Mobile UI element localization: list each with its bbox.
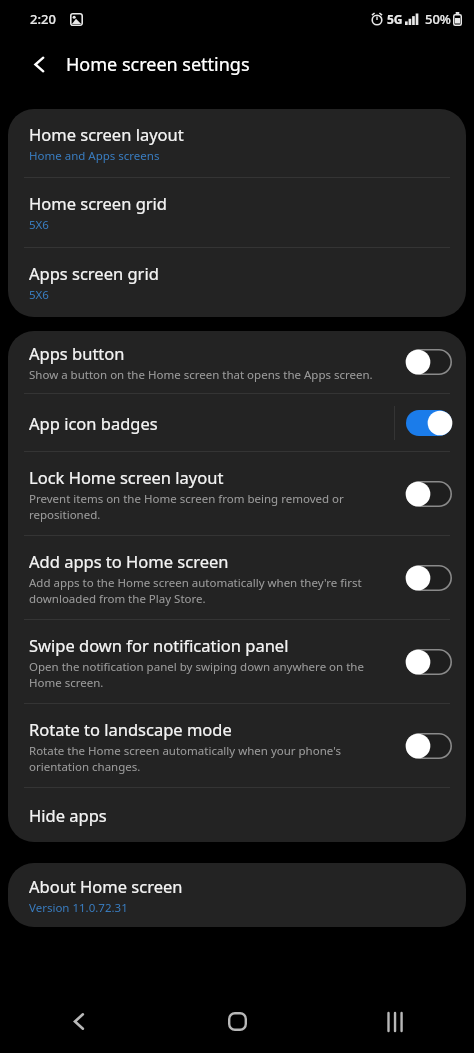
button[interactable]: Swipe down for notification panel	[8, 620, 466, 703]
button[interactable]: Home screen grid	[8, 178, 466, 247]
staticText: 5G	[387, 11, 403, 27]
button[interactable]: Home	[158, 990, 316, 1053]
staticText: Swipe down for notification panel	[29, 634, 289, 656]
button[interactable]: Off	[406, 649, 452, 675]
staticText: Apps button	[29, 342, 125, 364]
staticText: Version 11.0.72.31	[29, 900, 128, 916]
staticText: Home screen settings	[66, 52, 250, 77]
button[interactable]: Hide apps	[8, 788, 466, 842]
staticText: Add apps to the Home screen automaticall…	[29, 575, 396, 606]
button[interactable]: Home screen layout	[8, 109, 466, 177]
staticText: Add apps to Home screen	[29, 550, 229, 572]
button[interactable]: Apps button	[8, 331, 466, 393]
staticText: Home and Apps screens	[29, 148, 160, 164]
button[interactable]: Recent apps	[316, 990, 474, 1053]
button[interactable]: Apps screen grid	[8, 248, 466, 317]
button[interactable]: Off	[406, 349, 452, 375]
button[interactable]: About Home screen	[8, 863, 466, 927]
button[interactable]: App icon badges	[8, 394, 466, 451]
staticText: Lock Home screen layout	[29, 466, 224, 488]
button[interactable]: Add apps to Home screen	[8, 536, 466, 619]
staticText: Hide apps	[29, 804, 107, 826]
button[interactable]: Lock Home screen layout	[8, 452, 466, 535]
staticText: 5X6	[29, 217, 49, 233]
button[interactable]: Off	[406, 481, 452, 507]
staticText: Open the notification panel by swiping d…	[29, 659, 396, 690]
staticText: About Home screen	[29, 875, 183, 897]
staticText: Show a button on the Home screen that op…	[29, 367, 373, 383]
staticText: 5X6	[29, 287, 49, 303]
staticText: Home screen layout	[29, 123, 184, 145]
staticText: App icon badges	[29, 412, 158, 434]
button[interactable]: Off	[406, 733, 452, 759]
button[interactable]: Back	[22, 47, 56, 81]
staticText: 2:20	[30, 10, 56, 28]
button[interactable]: On	[406, 410, 452, 436]
staticText: Rotate to landscape mode	[29, 718, 232, 740]
staticText: Prevent items on the Home screen from be…	[29, 491, 396, 522]
button[interactable]: Rotate to landscape mode	[8, 704, 466, 787]
button[interactable]: Off	[406, 565, 452, 591]
staticText: Rotate the Home screen automatically whe…	[29, 743, 396, 774]
staticText: Home screen grid	[29, 192, 168, 214]
staticText: 50%	[425, 10, 451, 28]
staticText: Apps screen grid	[29, 262, 159, 284]
button[interactable]: Back	[0, 990, 158, 1053]
